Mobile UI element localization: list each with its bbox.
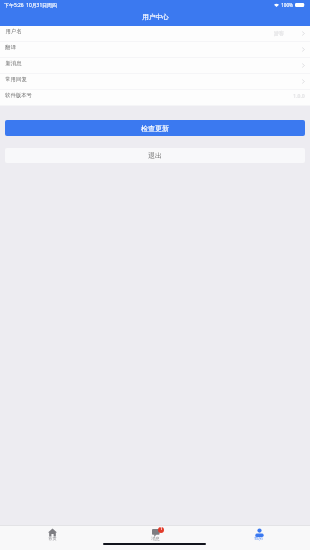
staticText: 退出 <box>148 151 162 160</box>
staticText: 100% <box>281 2 293 8</box>
button[interactable]: 翻译 <box>0 42 310 57</box>
staticText: 1 <box>160 527 163 532</box>
staticText: 首页 <box>48 536 57 541</box>
button[interactable]: 检查更新 <box>5 120 305 136</box>
button[interactable]: 软件版本号 <box>0 90 310 105</box>
staticText: 游客 <box>274 30 284 36</box>
staticText: 用户中心 <box>142 13 169 21</box>
button[interactable]: 用户名 <box>0 26 310 41</box>
button[interactable]: 新消息 <box>0 58 310 73</box>
staticText: 新消息 <box>5 60 22 67</box>
button[interactable]: 首页 <box>0 528 104 542</box>
staticText: 下午5:26 10月31日周四 <box>4 2 57 9</box>
staticText: 用户名 <box>5 28 22 35</box>
button[interactable]: 退出 <box>5 148 305 163</box>
staticText: 消息 <box>151 536 160 541</box>
staticText: 检查更新 <box>141 124 169 133</box>
button[interactable]: 常用回复 <box>0 74 310 89</box>
staticText: 翻译 <box>5 44 16 51</box>
staticText: 我的 <box>254 536 263 541</box>
button[interactable]: 1 <box>104 528 207 542</box>
staticText: 软件版本号 <box>5 92 32 99</box>
staticText: 1.0.0 <box>293 93 305 100</box>
button[interactable]: 我的 <box>207 528 310 542</box>
staticText: 常用回复 <box>5 76 27 83</box>
